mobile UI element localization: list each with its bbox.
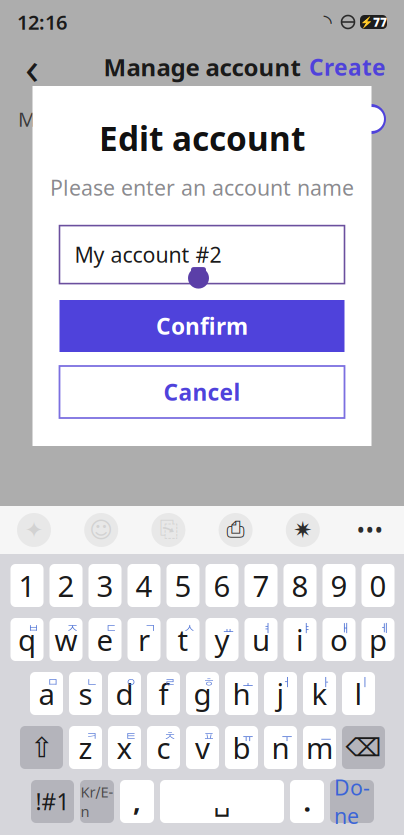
button[interactable]: ⇧	[20, 726, 63, 769]
button[interactable]: s	[69, 672, 102, 715]
staticText: 4	[135, 566, 152, 605]
staticText: a	[38, 674, 54, 713]
button[interactable]: c	[147, 726, 180, 769]
button[interactable]: g	[186, 672, 219, 715]
staticText: ␣	[213, 786, 230, 817]
staticText: ㅂ	[27, 621, 39, 636]
staticText: j	[276, 674, 284, 713]
button[interactable]: Back	[10, 45, 54, 89]
button[interactable]: 2	[49, 564, 82, 607]
staticText: u	[252, 620, 270, 659]
button[interactable]: Create	[301, 45, 394, 89]
button[interactable]: 1	[10, 564, 43, 607]
staticText: 5	[174, 566, 191, 605]
button[interactable]: j	[264, 672, 297, 715]
button[interactable]: q	[10, 618, 43, 661]
staticText: .	[303, 784, 310, 819]
button[interactable]: .	[290, 780, 324, 823]
staticText: e	[96, 620, 113, 659]
button[interactable]: a	[30, 672, 63, 715]
staticText: ㄷ	[105, 621, 117, 636]
button[interactable]: Kr∕En	[80, 780, 114, 823]
button[interactable]: 9	[322, 564, 355, 607]
button[interactable]: 7	[244, 564, 277, 607]
staticText: •••	[356, 515, 383, 545]
button[interactable]: d	[108, 672, 141, 715]
staticText: ㅡ	[320, 729, 332, 744]
staticText: m	[306, 728, 333, 767]
staticText: ㅓ	[281, 675, 293, 690]
staticText: 6	[213, 566, 230, 605]
button[interactable]: Done	[330, 780, 374, 823]
button[interactable]: Translate	[145, 509, 191, 551]
staticText: y	[214, 620, 229, 659]
button[interactable]: o	[322, 618, 355, 661]
staticText: 1	[18, 566, 35, 605]
staticText: My account #1	[18, 106, 154, 132]
button[interactable]: ␣	[160, 780, 284, 823]
button[interactable]: f	[147, 672, 180, 715]
button[interactable]: Keyboard settings	[280, 509, 326, 551]
staticText: ㄹ	[164, 675, 176, 690]
button[interactable]: !#1	[31, 780, 74, 823]
button[interactable]: 8	[283, 564, 316, 607]
staticText: h	[232, 674, 250, 713]
staticText: o	[330, 620, 348, 659]
button[interactable]: 3	[88, 564, 121, 607]
staticText: ㅌ	[125, 729, 137, 744]
button[interactable]: p	[361, 618, 394, 661]
button[interactable]: z	[69, 726, 102, 769]
button[interactable]: 0	[361, 564, 394, 607]
button[interactable]: 6	[205, 564, 238, 607]
staticText: s	[78, 674, 92, 713]
staticText: ✦	[24, 517, 43, 543]
staticText: ㅁ	[47, 675, 59, 690]
staticText: 9	[330, 566, 347, 605]
button[interactable]: r	[127, 618, 160, 661]
staticText: ㅏ	[320, 675, 332, 690]
button[interactable]: n	[264, 726, 297, 769]
staticText: ㅇ	[125, 675, 137, 690]
button[interactable]: Clipboard	[213, 509, 259, 551]
button[interactable]: i	[283, 618, 316, 661]
button[interactable]: Confirm	[59, 300, 344, 352]
button[interactable]: More	[347, 509, 393, 551]
button[interactable]: k	[303, 672, 336, 715]
staticText: ㄱ	[144, 621, 156, 636]
staticText: t	[177, 620, 188, 659]
staticText: ⚡	[360, 16, 373, 28]
staticText: 7	[252, 566, 269, 605]
button[interactable]: v	[186, 726, 219, 769]
staticText: ㅎ	[203, 675, 215, 690]
button[interactable]: w	[49, 618, 82, 661]
staticText: Confirm	[156, 311, 248, 341]
button[interactable]: m	[303, 726, 336, 769]
button[interactable]: b	[225, 726, 258, 769]
button[interactable]: ⌫	[342, 726, 385, 769]
staticText: ㅅ	[183, 621, 195, 636]
staticText: Create	[309, 52, 386, 82]
button[interactable]: y	[205, 618, 238, 661]
button[interactable]: t	[166, 618, 199, 661]
button[interactable]: x	[108, 726, 141, 769]
staticText: q	[18, 620, 36, 659]
button[interactable]: AI writing tools	[11, 509, 57, 551]
staticText: w	[54, 620, 77, 659]
button[interactable]: l	[342, 672, 375, 715]
button[interactable]: e	[88, 618, 121, 661]
staticText: ㅕ	[261, 621, 273, 636]
staticText: l	[354, 674, 362, 713]
staticText: ㅊ	[164, 729, 176, 744]
button[interactable]: u	[244, 618, 277, 661]
button[interactable]: h	[225, 672, 258, 715]
button[interactable]: Emoji	[78, 509, 124, 551]
staticText: ⎙	[227, 519, 245, 541]
staticText: Done	[334, 773, 370, 830]
staticText: ㅠ	[242, 729, 254, 744]
staticText: ㅑ	[300, 621, 312, 636]
button[interactable]: 4	[127, 564, 160, 607]
button[interactable]: Cancel	[59, 366, 344, 418]
button[interactable]: 5	[166, 564, 199, 607]
staticText: n	[271, 728, 289, 767]
button[interactable]: ,	[120, 780, 154, 823]
